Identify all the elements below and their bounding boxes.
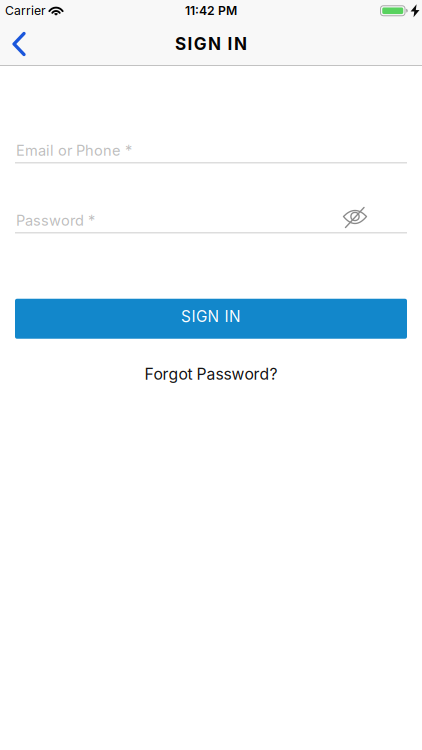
staticText: 11:42 PM (185, 3, 237, 18)
staticText: SIGN IN (175, 33, 247, 54)
button[interactable]: Password * (15, 212, 407, 233)
staticText: Forgot Password? (144, 364, 277, 383)
staticText: Password * (16, 212, 95, 229)
staticText: Carrier (5, 3, 46, 18)
button[interactable]: Email or Phone * (15, 142, 407, 163)
staticText: SIGN IN (181, 307, 241, 326)
button[interactable]: Back (4, 29, 34, 59)
staticText: Email or Phone * (16, 142, 132, 159)
button[interactable]: Show password (342, 205, 368, 229)
button[interactable]: Forgot Password? (144, 364, 277, 383)
button[interactable]: SIGN IN (15, 299, 407, 339)
